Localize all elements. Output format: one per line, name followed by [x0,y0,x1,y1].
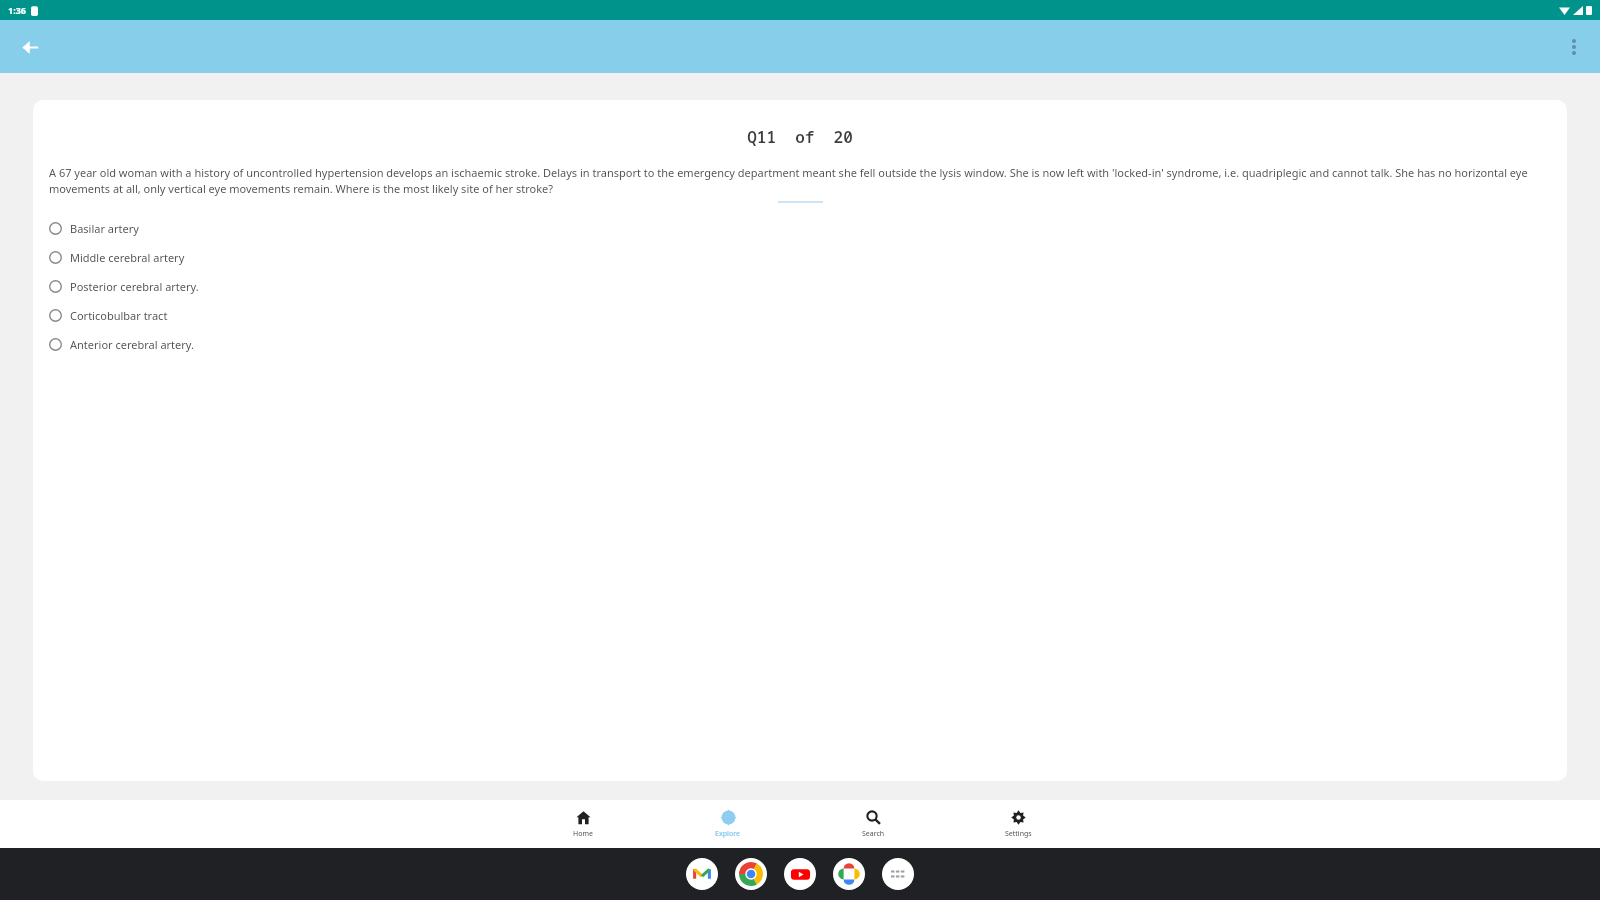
button[interactable]: All apps [882,858,914,890]
staticText: Anterior cerebral artery. [70,337,194,352]
button[interactable]: Middle cerebral artery [33,243,1567,272]
button[interactable]: Search [825,800,921,848]
button[interactable]: Anterior cerebral artery. [33,330,1567,359]
staticText: Posterior cerebral artery. [70,279,199,294]
button[interactable]: Posterior cerebral artery. [33,272,1567,301]
staticText: A 67 year old woman with a history of un… [49,165,1551,196]
button[interactable]: Basilar artery [33,214,1567,243]
staticText: Basilar artery [70,221,139,236]
staticText: Search [862,829,885,839]
staticText: 1:36 [8,4,26,16]
button[interactable]: Home [535,800,631,848]
button[interactable]: Settings [970,800,1066,848]
staticText: Middle cerebral artery [70,250,185,265]
button[interactable]: Gmail [686,858,718,890]
staticText: Explore [715,829,741,839]
button[interactable]: YouTube [784,858,816,890]
staticText: Q11 of 20 [33,126,1567,148]
button[interactable]: Explore [680,800,776,848]
staticText: Settings [1005,829,1032,839]
button[interactable]: Corticobulbar tract [33,301,1567,330]
staticText: Corticobulbar tract [70,308,168,323]
button[interactable]: Back [8,25,52,69]
button[interactable]: Chrome [735,858,767,890]
button[interactable]: More options [1554,27,1594,67]
button[interactable]: Photos [833,858,865,890]
staticText: Home [573,829,593,839]
